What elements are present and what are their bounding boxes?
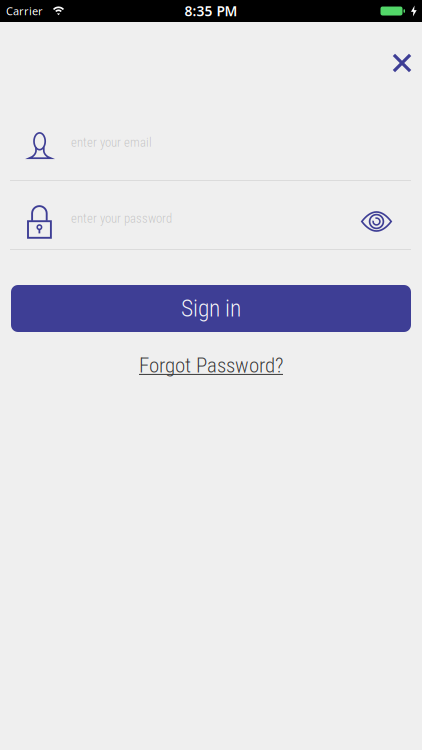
staticText: Forgot Password? — [139, 353, 283, 377]
staticText: 8:35 PM — [184, 2, 237, 20]
button[interactable]: Close — [387, 48, 417, 78]
textField[interactable]: enter your email — [53, 135, 422, 156]
staticText: Sign in — [181, 295, 241, 322]
staticText: Carrier — [6, 3, 43, 18]
staticText: enter your email — [71, 135, 152, 150]
staticText: enter your password — [71, 211, 172, 226]
button[interactable]: Forgot Password? — [139, 353, 283, 377]
button[interactable]: Show password — [361, 211, 392, 231]
secureTextField[interactable]: enter your password — [52, 211, 361, 232]
button[interactable]: Sign in — [11, 285, 411, 332]
